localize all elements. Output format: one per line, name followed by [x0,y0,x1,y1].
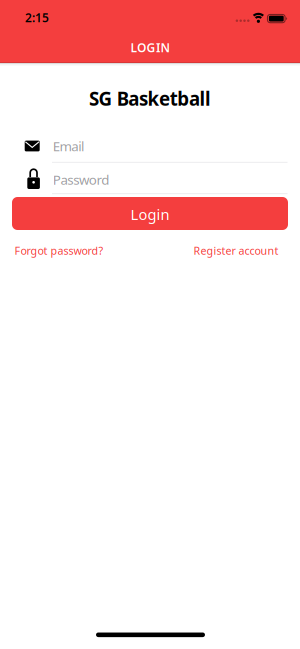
button[interactable]: Login [12,197,288,230]
staticText: SG Basketball [89,86,211,111]
staticText: Email [53,137,84,155]
staticText: LOGIN [130,39,170,55]
staticText: Password [53,171,109,188]
button[interactable]: Register account [168,244,278,258]
staticText: Register account [193,244,278,258]
staticText: Login [130,204,169,224]
staticText: 2:15 [25,9,49,25]
staticText: Forgot password? [14,244,103,258]
button[interactable]: Forgot password? [14,244,124,258]
